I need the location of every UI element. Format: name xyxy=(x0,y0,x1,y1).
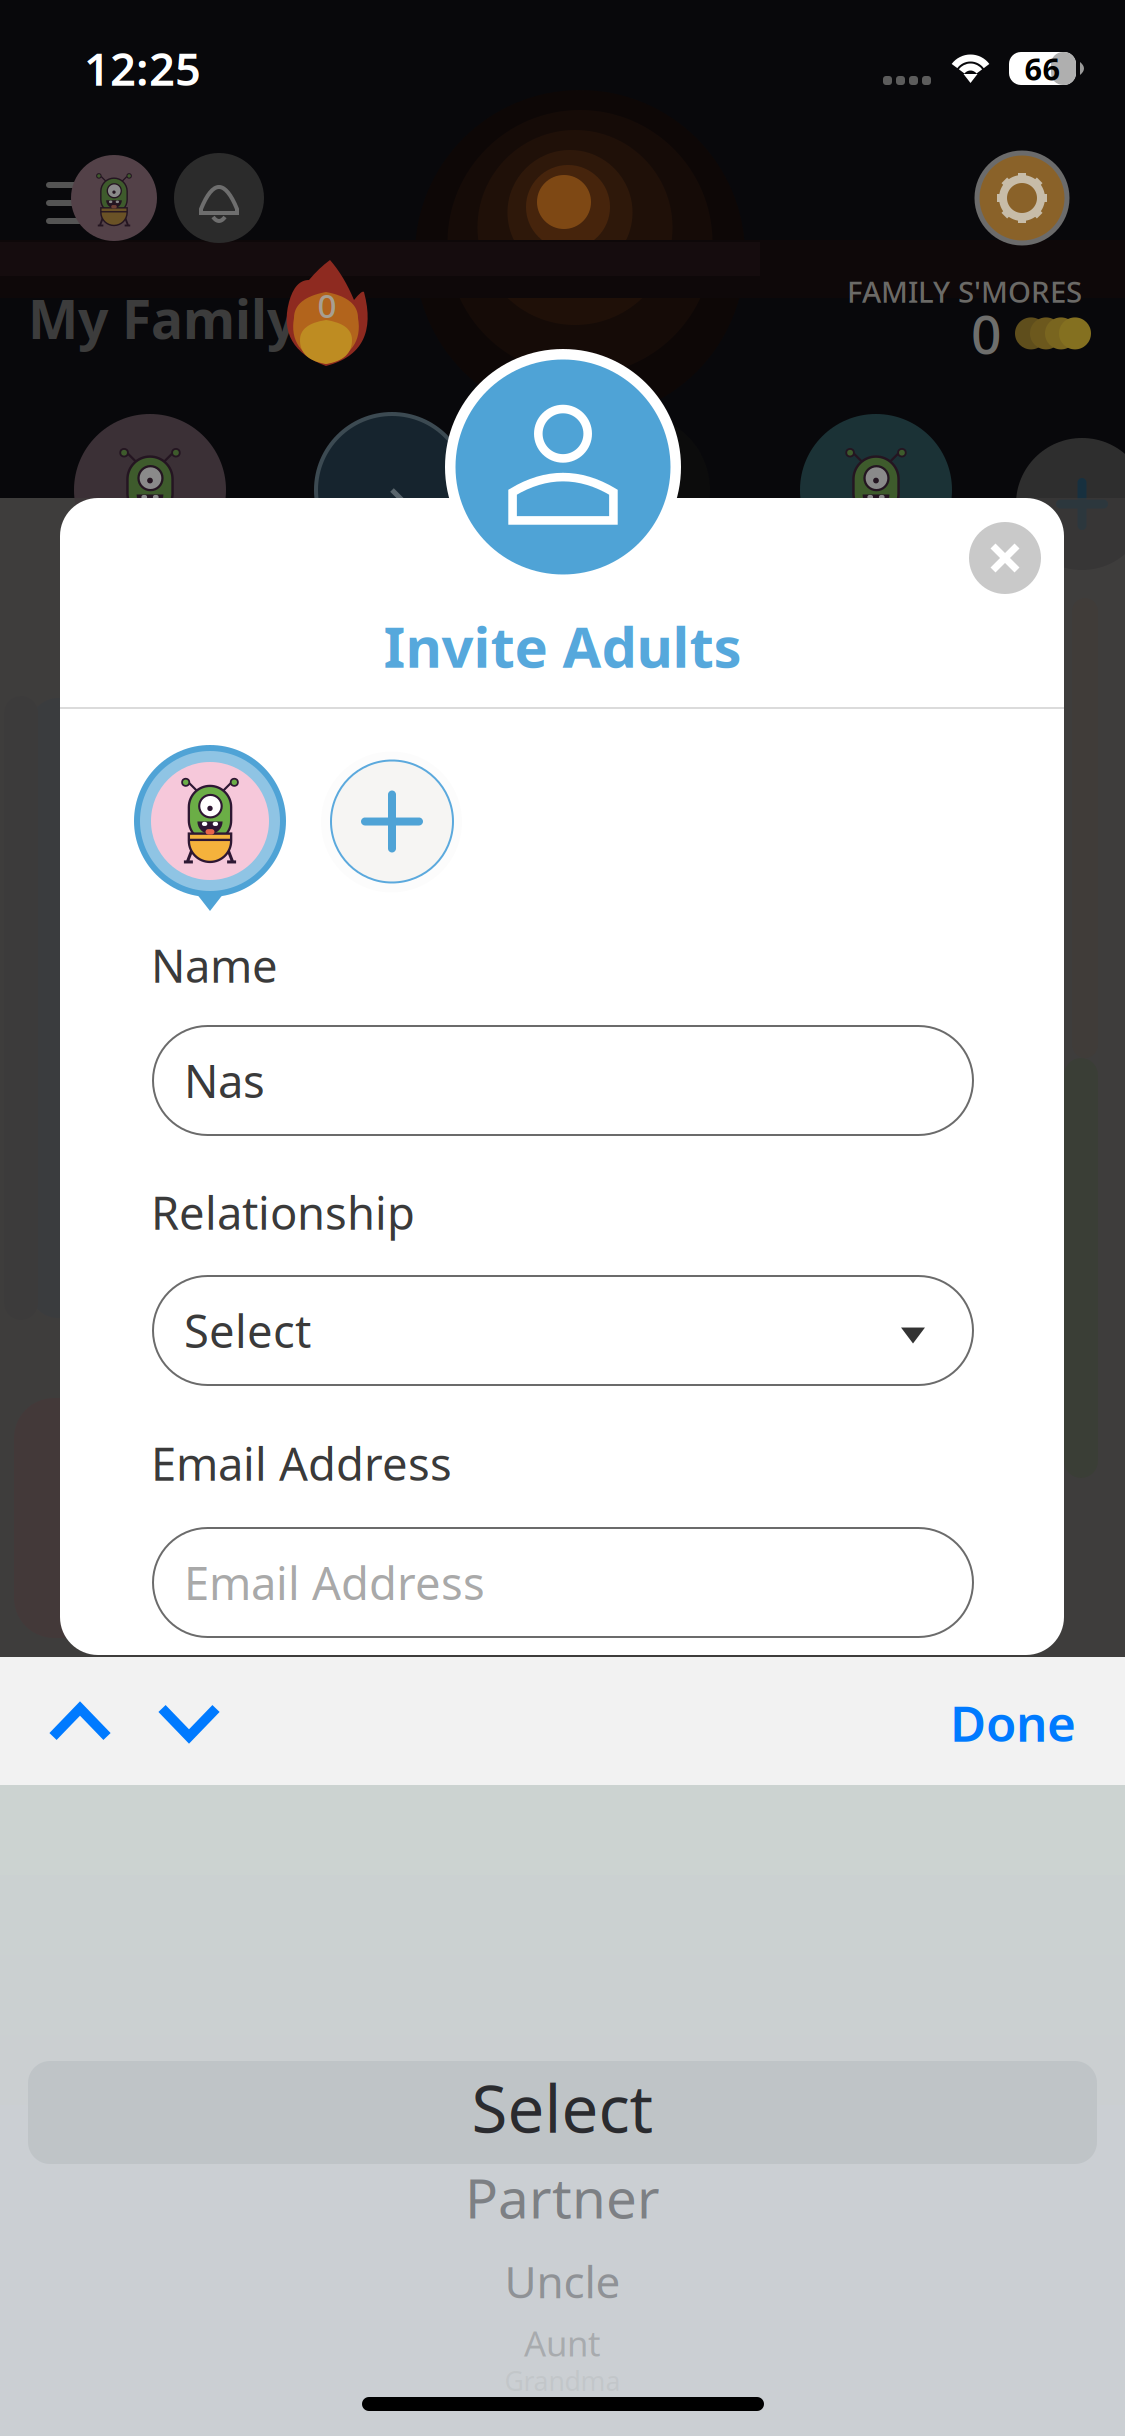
button[interactable]: Nas xyxy=(153,1026,973,1135)
button[interactable]: Previous field xyxy=(28,1657,132,1788)
button[interactable]: Next field xyxy=(137,1657,241,1788)
button[interactable]: Notifications xyxy=(174,153,264,243)
staticText: 12:25 xyxy=(84,38,201,98)
staticText: 0 xyxy=(317,283,336,327)
staticText: Invite Adults xyxy=(383,609,741,683)
button[interactable]: Profile xyxy=(71,155,157,241)
button[interactable]: Close xyxy=(955,508,1055,608)
staticText: Select xyxy=(471,2064,653,2151)
button[interactable]: Settings xyxy=(977,153,1067,243)
button[interactable]: Add adult xyxy=(324,745,465,915)
staticText: My Family xyxy=(28,283,297,354)
button[interactable]: Nas avatar xyxy=(134,745,286,915)
staticText: Name xyxy=(151,935,278,995)
staticText: Nas xyxy=(184,1050,265,1111)
staticText: Uncle xyxy=(504,2252,620,2310)
button[interactable]: Done xyxy=(950,1657,1076,1788)
staticText: Email Address xyxy=(184,1552,485,1613)
staticText: FAMILY S'MORES xyxy=(847,272,1082,311)
staticText: Done xyxy=(950,1690,1076,1755)
staticText: Grandma xyxy=(504,2363,620,2398)
staticText: 0 xyxy=(971,298,1002,369)
staticText: Email Address xyxy=(151,1433,452,1493)
staticText: Aunt xyxy=(524,2320,601,2366)
staticText: 66 xyxy=(1024,48,1060,89)
staticText: Relationship xyxy=(151,1182,415,1242)
staticText: Select xyxy=(184,1300,311,1361)
button[interactable]: Add family member xyxy=(1016,438,1125,570)
staticText: Partner xyxy=(465,2161,660,2234)
button[interactable]: Email Address xyxy=(153,1528,973,1637)
button[interactable]: Select xyxy=(153,1276,973,1385)
